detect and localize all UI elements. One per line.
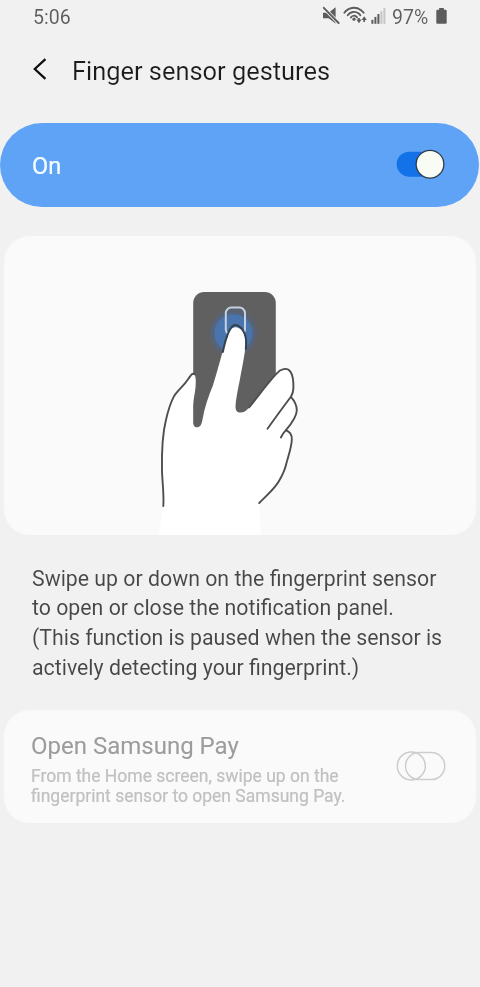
staticText: Finger sensor gestures xyxy=(72,56,330,86)
staticText: 5:06 xyxy=(33,6,71,29)
button[interactable]: Open Samsung Pay xyxy=(4,710,476,823)
staticText: Swipe up or down on the fingerprint sens… xyxy=(32,566,443,681)
staticText: 97% xyxy=(392,6,429,29)
staticText: On xyxy=(32,152,62,180)
staticText: From the Home screen, swipe up on the fi… xyxy=(31,766,346,806)
button[interactable]: On xyxy=(0,123,479,207)
button[interactable]: Navigate up xyxy=(17,45,65,93)
button[interactable]: Open Samsung Pay toggle xyxy=(392,746,452,786)
staticText: Open Samsung Pay xyxy=(31,732,239,760)
